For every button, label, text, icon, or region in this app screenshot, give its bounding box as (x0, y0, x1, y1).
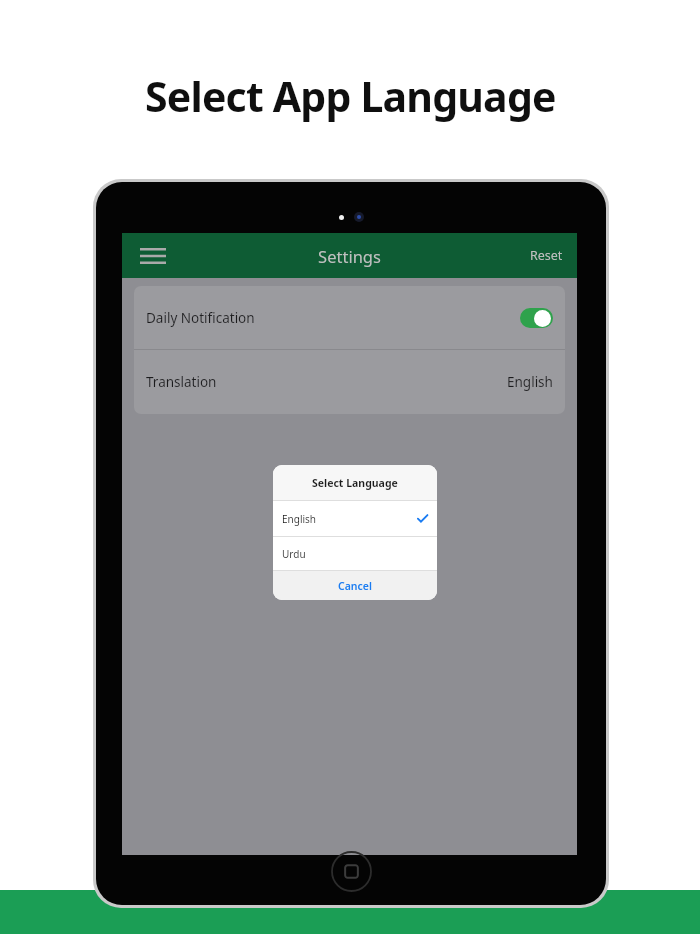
staticText: Daily Notification (146, 309, 520, 327)
button[interactable]: Urdu (273, 537, 437, 570)
staticText: English (507, 373, 553, 391)
button[interactable]: English (273, 501, 437, 536)
button[interactable]: Home (331, 851, 372, 892)
staticText: Select Language (312, 476, 398, 490)
staticText: Urdu (282, 547, 306, 561)
button[interactable]: Translation (134, 350, 565, 414)
staticText: Settings (318, 245, 381, 267)
staticText: Translation (146, 373, 507, 391)
staticText: English (282, 512, 417, 526)
staticText: Reset (530, 247, 563, 264)
button[interactable]: Open navigation menu (137, 243, 169, 269)
button[interactable]: Daily Notification (134, 286, 565, 349)
button[interactable]: Reset (516, 237, 577, 274)
staticText: Cancel (338, 579, 372, 593)
button[interactable]: Cancel (273, 571, 437, 600)
staticText: Select App Language (145, 68, 556, 124)
